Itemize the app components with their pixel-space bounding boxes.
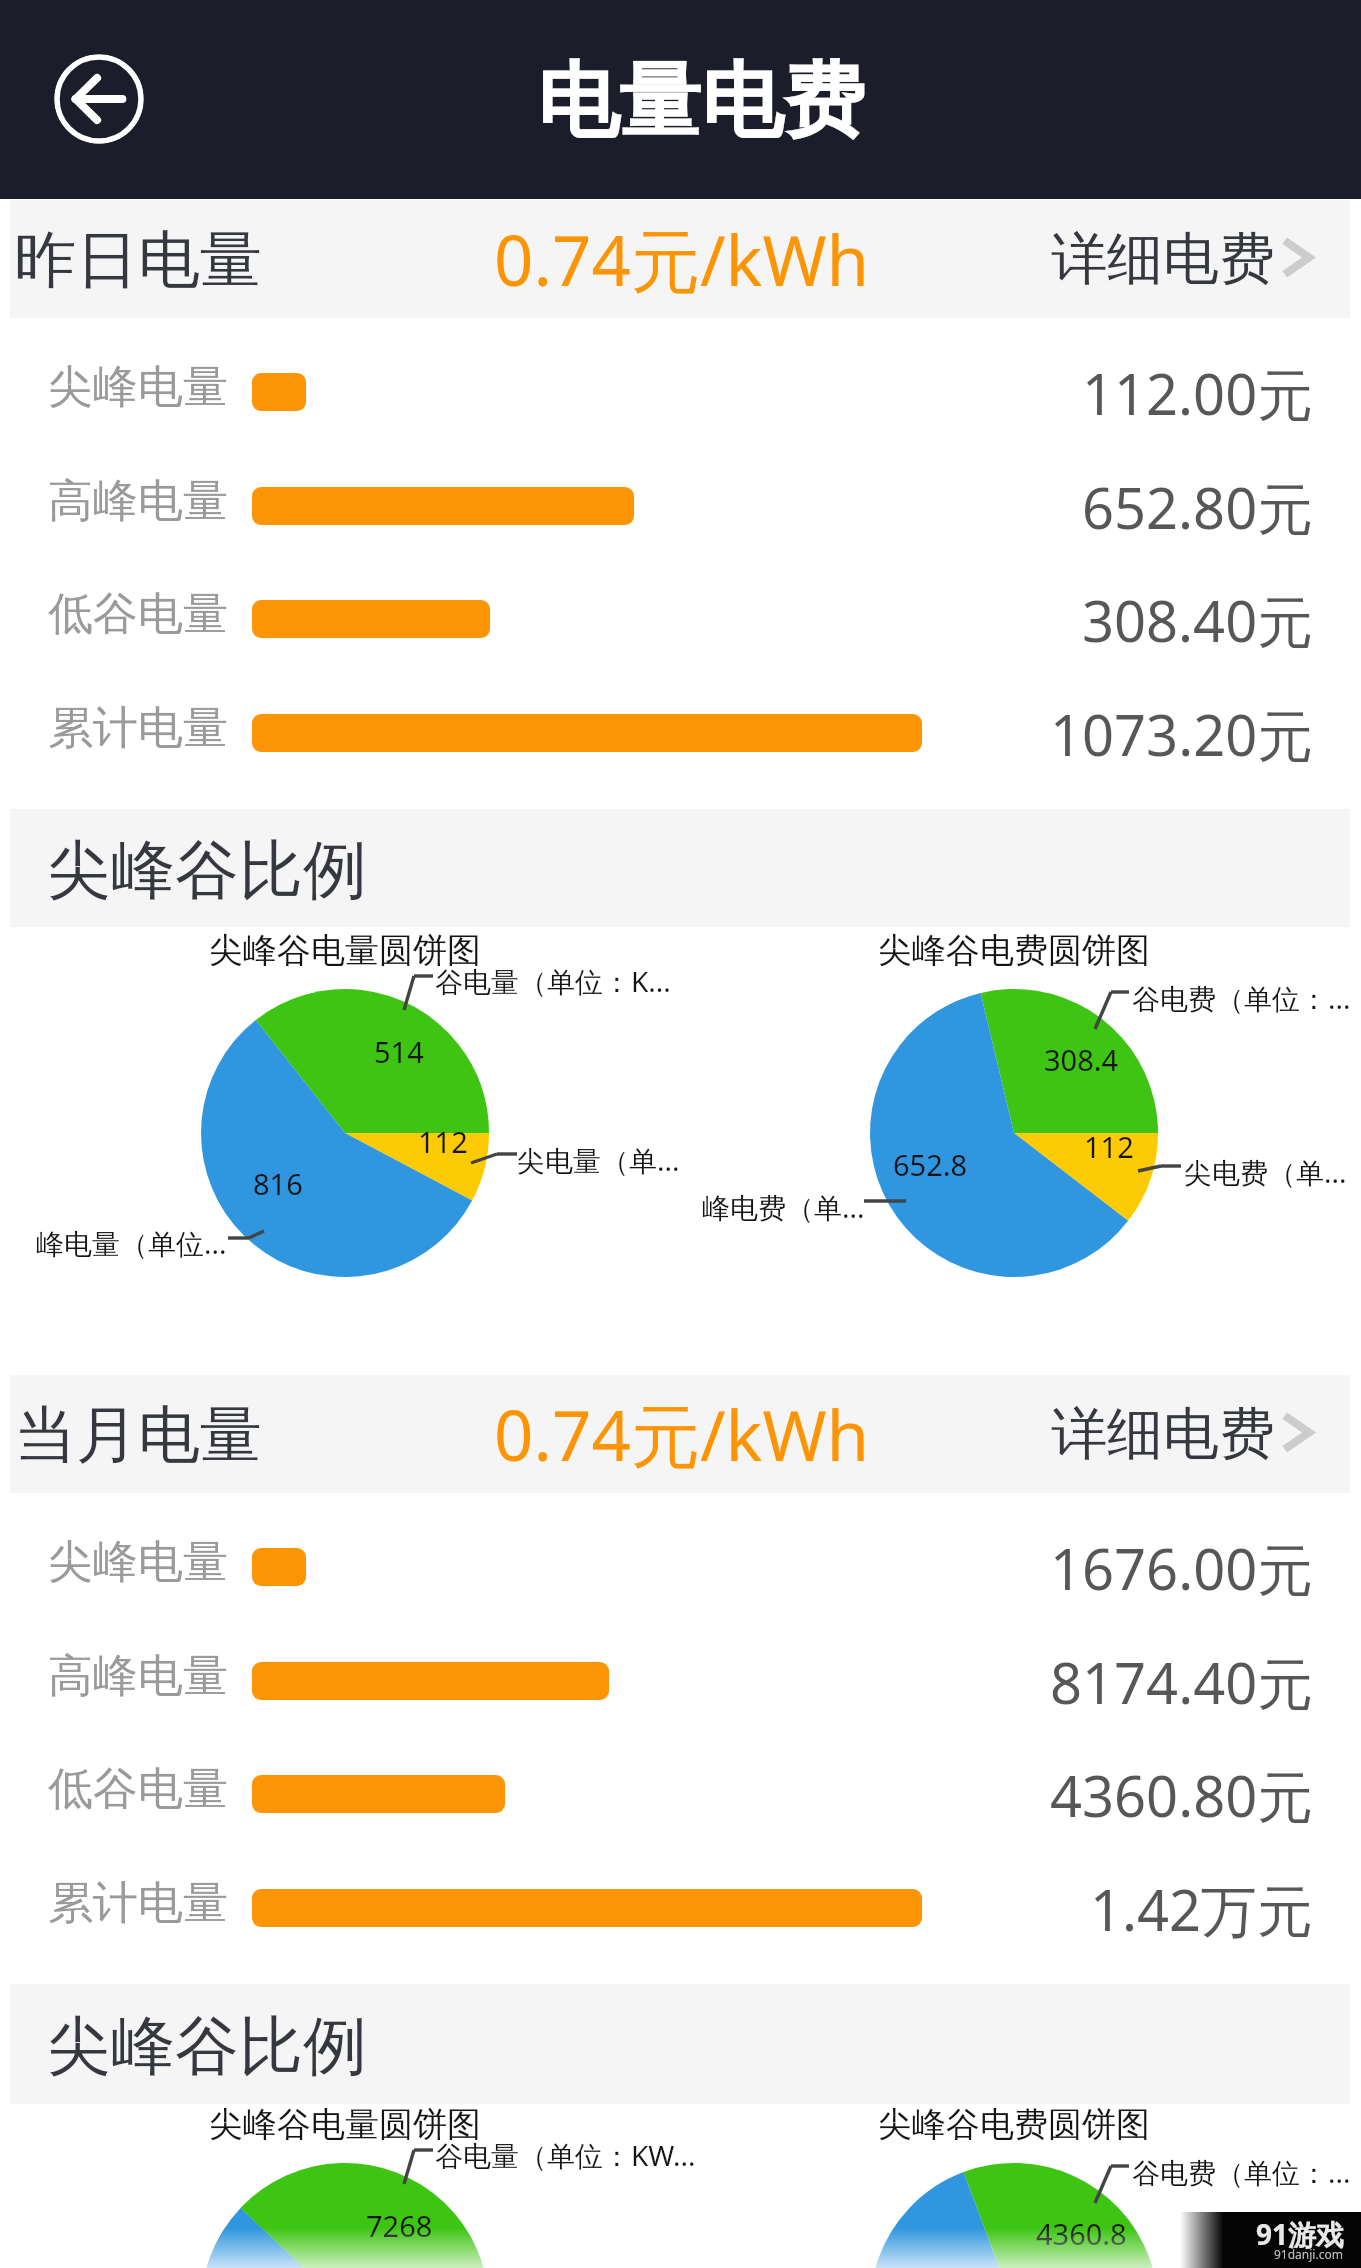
staticText: 8174.40元 bbox=[1050, 1644, 1314, 1720]
staticText: 低谷电量 bbox=[48, 1761, 228, 1818]
staticText: 当月电量 bbox=[14, 1396, 262, 1474]
staticText: 0.74元/kWh bbox=[494, 212, 870, 306]
staticText: 尖峰电量 bbox=[48, 359, 228, 416]
staticText: 7268 bbox=[366, 2206, 433, 2245]
staticText: 尖峰谷电费圆饼图 bbox=[878, 2103, 1150, 2146]
staticText: 累计电量 bbox=[48, 1875, 228, 1932]
staticText: 尖电量（单... bbox=[517, 1141, 680, 1179]
staticText: 高峰电量 bbox=[48, 1648, 228, 1705]
staticText: 谷电费（单位：... bbox=[1132, 2153, 1351, 2191]
staticText: 尖峰谷比例 bbox=[47, 2006, 367, 2087]
staticText: 308.4 bbox=[1044, 1040, 1119, 1079]
staticText: 高峰电量 bbox=[48, 473, 228, 530]
staticText: 低谷电量 bbox=[48, 586, 228, 643]
staticText: 电量电费 bbox=[537, 50, 865, 153]
staticText: 尖峰谷电费圆饼图 bbox=[878, 929, 1150, 972]
staticText: 1676.00元 bbox=[1050, 1530, 1314, 1606]
staticText: 652.8 bbox=[893, 1145, 968, 1184]
staticText: 谷电费（单位：... bbox=[1132, 979, 1351, 1017]
staticText: 昨日电量 bbox=[14, 221, 262, 299]
staticText: 尖电费（单... bbox=[1184, 1153, 1347, 1191]
staticText: 514 bbox=[374, 1032, 424, 1071]
staticText: 4360.80元 bbox=[1050, 1757, 1314, 1833]
staticText: 4360.8 bbox=[1036, 2214, 1127, 2253]
button[interactable]: 昨日电量 bbox=[10, 200, 1350, 318]
staticText: 1073.20元 bbox=[1050, 696, 1314, 772]
staticText: 谷电量（单位：KW... bbox=[435, 2136, 696, 2174]
staticText: 尖峰谷电量圆饼图 bbox=[209, 2103, 481, 2146]
button[interactable]: Back bbox=[54, 54, 144, 144]
staticText: 816 bbox=[253, 1164, 303, 1203]
staticText: 91游戏 bbox=[1256, 2215, 1345, 2253]
staticText: 谷电量（单位：K... bbox=[435, 962, 671, 1000]
staticText: 91danji.com bbox=[1274, 2246, 1343, 2262]
staticText: 尖峰谷比例 bbox=[47, 830, 367, 911]
staticText: 尖峰电量 bbox=[48, 1534, 228, 1591]
staticText: 112.00元 bbox=[1082, 355, 1314, 431]
button[interactable]: 当月电量 bbox=[10, 1375, 1350, 1493]
staticText: 652.80元 bbox=[1082, 469, 1314, 545]
staticText: 详细电费 bbox=[1051, 1399, 1275, 1470]
staticText: 1.42万元 bbox=[1090, 1871, 1314, 1947]
staticText: 详细电费 bbox=[1051, 224, 1275, 295]
staticText: 峰电量（单位... bbox=[36, 1224, 227, 1262]
staticText: 0.74元/kWh bbox=[494, 1387, 870, 1481]
staticText: 尖峰谷电量圆饼图 bbox=[209, 929, 481, 972]
staticText: 112 bbox=[1084, 1127, 1134, 1166]
staticText: 112 bbox=[418, 1122, 468, 1161]
staticText: 累计电量 bbox=[48, 700, 228, 757]
staticText: 308.40元 bbox=[1082, 582, 1314, 658]
staticText: 峰电费（单... bbox=[702, 1188, 865, 1226]
